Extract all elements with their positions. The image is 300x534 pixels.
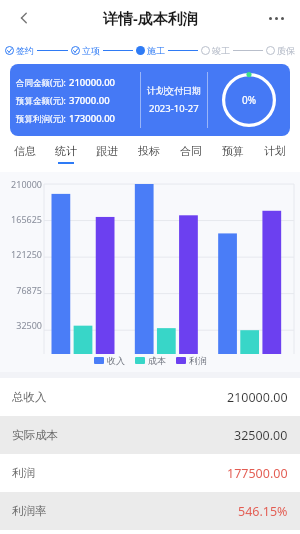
- button[interactable]: 投标: [128, 136, 170, 172]
- staticText: 0%: [242, 93, 257, 107]
- staticText: 计划: [264, 144, 286, 158]
- staticText: 立项: [82, 45, 100, 56]
- staticText: 竣工: [212, 45, 230, 56]
- staticText: 210000.00: [69, 76, 116, 89]
- staticText: 76875: [16, 284, 42, 296]
- button[interactable]: 跟进: [86, 136, 128, 172]
- staticText: 总收入: [12, 390, 47, 404]
- staticText: 施工: [147, 45, 165, 56]
- staticText: 计划交付日期: [147, 85, 201, 96]
- button[interactable]: 合同: [170, 136, 212, 172]
- staticText: 签约: [16, 45, 34, 56]
- staticText: 投标: [138, 144, 160, 158]
- staticText: 合同金额(元):: [16, 77, 66, 89]
- button[interactable]: More options: [260, 2, 292, 34]
- staticText: 成本: [148, 355, 166, 366]
- staticText: 收入: [107, 355, 125, 366]
- staticText: 统计: [55, 144, 77, 158]
- button[interactable]: 竣工: [201, 45, 230, 56]
- button[interactable]: 利润: [0, 454, 300, 492]
- button[interactable]: 合同金额(元):: [10, 64, 290, 136]
- button[interactable]: 成本: [135, 355, 166, 366]
- staticText: 32500.00: [234, 427, 288, 444]
- staticText: 210000: [11, 178, 42, 190]
- staticText: 详情-成本利润: [103, 8, 198, 28]
- button[interactable]: 利润率: [0, 492, 300, 530]
- button[interactable]: 统计: [45, 136, 86, 172]
- button[interactable]: 总收入: [0, 378, 300, 416]
- staticText: 546.15%: [238, 503, 288, 520]
- staticText: 跟进: [96, 144, 118, 158]
- button[interactable]: 实际成本: [0, 416, 300, 454]
- button[interactable]: Back: [8, 2, 40, 34]
- button[interactable]: 施工: [136, 45, 165, 56]
- staticText: 预算利润(元):: [16, 113, 66, 125]
- staticText: 预算金额(元):: [16, 95, 66, 107]
- button[interactable]: 签约: [5, 45, 34, 56]
- staticText: 利润: [189, 355, 207, 366]
- button[interactable]: 利润: [176, 355, 207, 366]
- staticText: 实际成本: [12, 428, 58, 442]
- staticText: 信息: [14, 144, 36, 158]
- staticText: 质保: [277, 45, 295, 56]
- button[interactable]: 质保: [266, 45, 295, 56]
- staticText: 210000.00: [227, 389, 288, 406]
- staticText: 利润: [12, 466, 35, 480]
- button[interactable]: 计划: [254, 136, 296, 172]
- button[interactable]: 信息: [4, 136, 45, 172]
- button[interactable]: 立项: [71, 45, 100, 56]
- staticText: 37000.00: [69, 94, 110, 107]
- staticText: 合同: [180, 144, 202, 158]
- staticText: 173000.00: [69, 112, 116, 125]
- staticText: 预算: [222, 144, 244, 158]
- staticText: 121250: [11, 248, 42, 260]
- staticText: 177500.00: [227, 465, 288, 482]
- staticText: 165625: [11, 213, 42, 225]
- staticText: 2023-10-27: [149, 102, 199, 115]
- button[interactable]: 预算: [212, 136, 254, 172]
- staticText: 利润率: [12, 504, 47, 518]
- button[interactable]: 收入: [94, 355, 125, 366]
- staticText: 32500: [16, 319, 42, 331]
